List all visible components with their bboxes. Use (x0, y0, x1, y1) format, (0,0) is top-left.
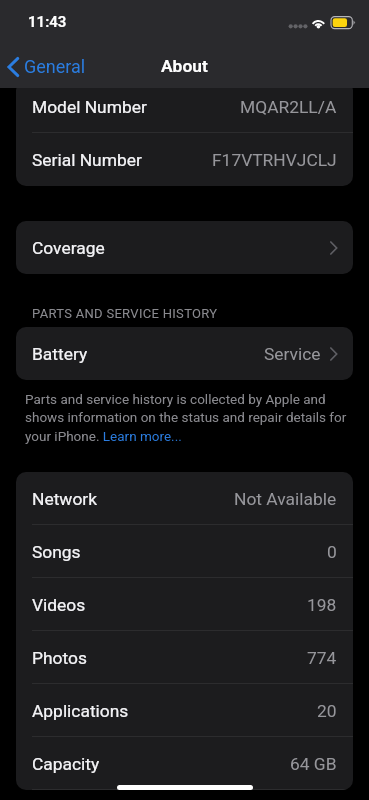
staticText: 774 (307, 648, 337, 668)
button[interactable]: Capacity (16, 737, 353, 790)
button[interactable]: Coverage (16, 221, 353, 274)
button[interactable]: Photos (16, 631, 353, 684)
staticText: Songs (32, 542, 81, 562)
button[interactable]: Network (16, 472, 353, 525)
button[interactable]: Parts and service history is collected b… (25, 391, 349, 444)
staticText: Battery (32, 344, 88, 364)
staticText: Photos (32, 648, 87, 668)
staticText: PARTS AND SERVICE HISTORY (32, 306, 218, 321)
button[interactable]: Applications (16, 684, 353, 737)
button[interactable]: Serial Number (16, 133, 353, 186)
staticText: About (161, 56, 208, 76)
staticText: 0 (327, 542, 337, 562)
staticText: 11:43 (28, 13, 67, 31)
staticText: F17VTRHVJCLJ (212, 150, 337, 170)
staticText: Service (264, 344, 321, 364)
staticText: Coverage (32, 238, 105, 258)
staticText: MQAR2LL/A (240, 97, 337, 117)
staticText: 64 GB (290, 754, 337, 774)
button[interactable]: Songs (16, 525, 353, 578)
button[interactable]: Battery (16, 327, 353, 380)
staticText: Network (32, 489, 98, 509)
staticText: General (24, 56, 86, 77)
button[interactable]: Model Number (16, 80, 353, 133)
staticText: Capacity (32, 754, 100, 774)
staticText: 20 (317, 701, 337, 721)
staticText: Videos (32, 595, 86, 615)
staticText: Not Available (234, 489, 337, 509)
staticText: 198 (307, 595, 337, 615)
staticText: Serial Number (32, 150, 142, 170)
other: Status icons (0, 0, 369, 44)
button[interactable]: General (0, 50, 96, 83)
staticText: Model Number (32, 97, 147, 117)
button[interactable]: Videos (16, 578, 353, 631)
staticText: Applications (32, 701, 129, 721)
